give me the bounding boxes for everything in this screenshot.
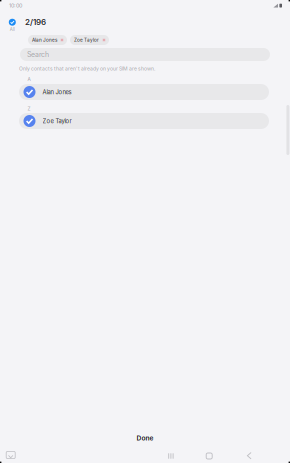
- button[interactable]: Select all: [0, 19, 24, 31]
- staticText: Alan Jones: [42, 88, 71, 96]
- button[interactable]: Done: [0, 427, 290, 449]
- button[interactable]: Alan Jones: [28, 35, 67, 45]
- staticText: Z: [27, 106, 30, 112]
- staticText: Done: [136, 434, 153, 442]
- button[interactable]: Alan Jones: [19, 84, 269, 100]
- staticText: A: [27, 76, 30, 82]
- staticText: Alan Jones: [32, 37, 57, 43]
- button[interactable]: Recent apps: [163, 449, 179, 462]
- button[interactable]: Back: [241, 449, 257, 462]
- staticText: Search: [27, 50, 49, 59]
- button[interactable]: Zoe Taylor: [70, 35, 109, 45]
- staticText: Zoe Taylor: [42, 117, 71, 125]
- staticText: 10:00: [9, 2, 22, 9]
- staticText: All: [10, 27, 15, 32]
- staticText: Zoe Taylor: [74, 37, 99, 43]
- staticText: Only contacts that aren't already on you…: [19, 65, 155, 72]
- button[interactable]: Search: [20, 48, 270, 61]
- staticText: 2/196: [25, 17, 46, 27]
- button[interactable]: Home: [201, 449, 217, 462]
- button[interactable]: Zoe Taylor: [19, 113, 269, 129]
- button[interactable]: Hide keyboard: [4, 449, 17, 460]
